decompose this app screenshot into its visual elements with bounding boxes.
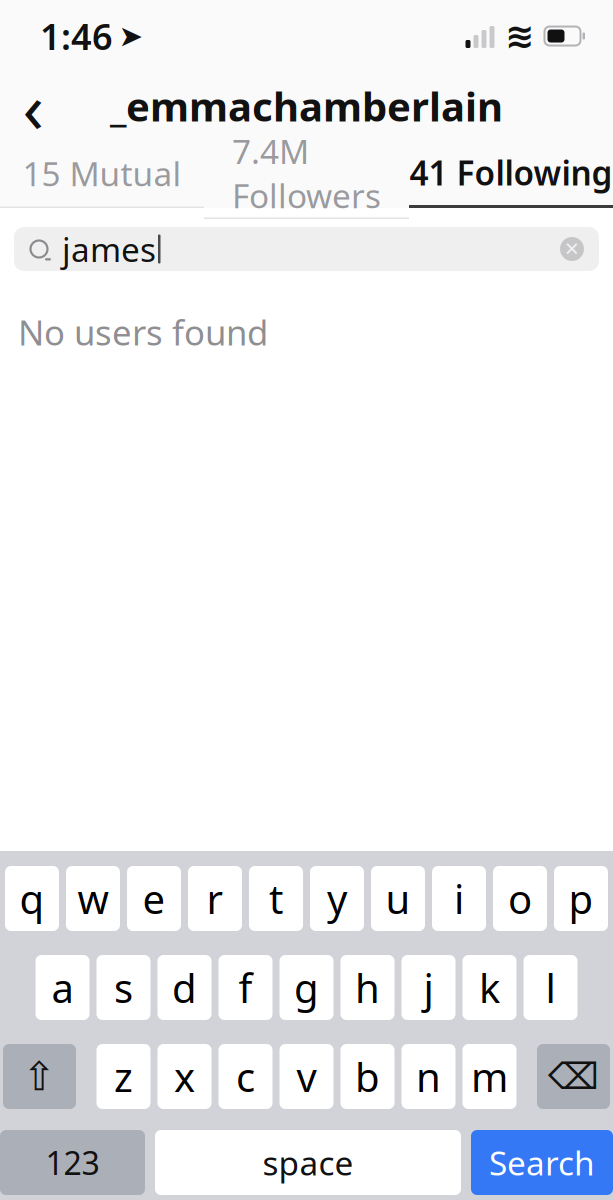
staticText: r xyxy=(206,872,223,925)
staticText: p xyxy=(568,872,593,925)
staticText: n xyxy=(416,1050,441,1103)
button[interactable]: Back xyxy=(0,74,66,138)
staticText: ➤ xyxy=(118,19,143,53)
button[interactable]: v xyxy=(279,1044,333,1109)
staticText: y xyxy=(327,872,347,925)
button[interactable]: Delete xyxy=(537,1044,610,1109)
staticText: e xyxy=(142,872,165,925)
button[interactable]: a xyxy=(35,955,89,1020)
button[interactable]: y xyxy=(310,866,364,931)
staticText: 7.4M Followers xyxy=(232,129,381,217)
staticText: f xyxy=(238,961,252,1014)
staticText: ⇧ xyxy=(22,1054,56,1099)
staticText: c xyxy=(236,1050,255,1103)
staticText: ⌫ xyxy=(548,1056,599,1097)
button[interactable]: z xyxy=(96,1044,150,1109)
staticText: o xyxy=(508,872,532,925)
button[interactable]: james xyxy=(0,208,613,271)
button[interactable]: h xyxy=(340,955,394,1020)
staticText: 41 Following xyxy=(409,150,612,195)
staticText: ✕ xyxy=(564,238,580,260)
button[interactable]: l xyxy=(523,955,577,1020)
button[interactable]: Search xyxy=(471,1130,613,1195)
staticText: 15 Mutual xyxy=(22,151,181,195)
button[interactable]: i xyxy=(432,866,486,931)
staticText: g xyxy=(294,961,319,1014)
button[interactable]: b xyxy=(340,1044,394,1109)
staticText: a xyxy=(51,961,73,1014)
button[interactable]: 7.4M Followers xyxy=(204,140,409,208)
staticText: l xyxy=(545,961,555,1014)
staticText: 1:46 xyxy=(40,12,113,60)
staticText: ≋ xyxy=(505,16,534,56)
button[interactable]: p xyxy=(554,866,608,931)
staticText: u xyxy=(385,872,410,925)
button[interactable]: e xyxy=(127,866,181,931)
staticText: t xyxy=(269,872,283,925)
button[interactable]: n xyxy=(401,1044,455,1109)
button[interactable]: Shift xyxy=(3,1044,76,1109)
button[interactable]: 41 Following xyxy=(409,140,613,208)
button[interactable]: 123 xyxy=(0,1130,145,1195)
staticText: j xyxy=(423,961,433,1014)
button[interactable]: j xyxy=(401,955,455,1020)
staticText: v xyxy=(296,1050,316,1103)
staticText: i xyxy=(454,872,464,925)
staticText: space xyxy=(262,1140,353,1185)
staticText: s xyxy=(114,961,133,1014)
staticText: k xyxy=(479,961,500,1014)
button[interactable]: c xyxy=(218,1044,272,1109)
staticText: d xyxy=(172,961,197,1014)
button[interactable]: x xyxy=(157,1044,211,1109)
staticText: _emmachamberlain xyxy=(110,79,503,132)
button[interactable]: 15 Mutual xyxy=(0,140,204,208)
button[interactable]: s xyxy=(96,955,150,1020)
staticText: No users found xyxy=(18,309,268,355)
button[interactable]: w xyxy=(66,866,120,931)
button[interactable]: f xyxy=(218,955,272,1020)
staticText: b xyxy=(355,1050,380,1103)
staticText: w xyxy=(77,872,108,925)
staticText: 123 xyxy=(45,1141,99,1184)
button[interactable]: u xyxy=(371,866,425,931)
button[interactable]: k xyxy=(462,955,516,1020)
button[interactable]: space xyxy=(155,1130,461,1195)
button[interactable]: m xyxy=(462,1044,516,1109)
staticText: h xyxy=(355,961,380,1014)
staticText: q xyxy=(19,872,44,925)
staticText: Search xyxy=(489,1140,595,1185)
staticText: m xyxy=(471,1050,508,1103)
button[interactable]: q xyxy=(5,866,59,931)
staticText: james xyxy=(62,227,156,271)
button[interactable]: t xyxy=(249,866,303,931)
staticText: z xyxy=(114,1050,133,1103)
button[interactable]: d xyxy=(157,955,211,1020)
staticText: ‹ xyxy=(22,60,43,152)
button[interactable]: o xyxy=(493,866,547,931)
button[interactable]: g xyxy=(279,955,333,1020)
button[interactable]: r xyxy=(188,866,242,931)
staticText: x xyxy=(174,1050,195,1103)
